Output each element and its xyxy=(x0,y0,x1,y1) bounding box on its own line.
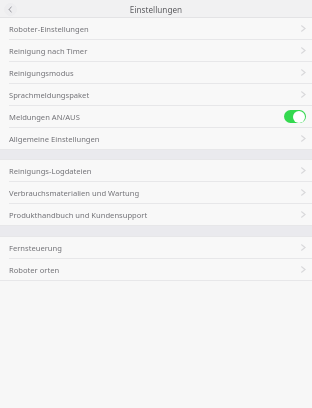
staticText: Allgemeine Einstellungen xyxy=(9,134,100,144)
staticText: Reinigungsmodus xyxy=(9,68,74,78)
staticText: Roboter orten xyxy=(9,265,60,275)
button[interactable]: Produkthandbuch und Kundensupport xyxy=(0,204,312,225)
button[interactable]: Zurück xyxy=(4,3,17,16)
button[interactable]: Roboter orten xyxy=(0,259,312,280)
staticText: Reinigungs-Logdateien xyxy=(9,166,92,176)
staticText: Verbrauchsmaterialien und Wartung xyxy=(9,188,140,198)
button[interactable]: Reinigungs-Logdateien xyxy=(0,160,312,181)
button[interactable]: Meldungen AN/AUS Schalter xyxy=(284,110,306,123)
button[interactable]: Reinigung nach Timer xyxy=(0,40,312,61)
button[interactable]: Meldungen AN/AUS xyxy=(0,106,312,127)
button[interactable]: Verbrauchsmaterialien und Wartung xyxy=(0,182,312,203)
staticText: Einstellungen xyxy=(0,4,312,15)
staticText: Reinigung nach Timer xyxy=(9,46,88,56)
staticText: Produkthandbuch und Kundensupport xyxy=(9,210,148,220)
button[interactable]: Reinigungsmodus xyxy=(0,62,312,83)
button[interactable]: Fernsteuerung xyxy=(0,237,312,258)
staticText: Meldungen AN/AUS xyxy=(9,112,80,122)
staticText: Roboter-Einstellungen xyxy=(9,24,89,34)
button[interactable]: Sprachmeldungspaket xyxy=(0,84,312,105)
button[interactable]: Roboter-Einstellungen xyxy=(0,18,312,39)
staticText: Sprachmeldungspaket xyxy=(9,90,90,100)
staticText: Fernsteuerung xyxy=(9,243,62,253)
button[interactable]: Allgemeine Einstellungen xyxy=(0,128,312,149)
